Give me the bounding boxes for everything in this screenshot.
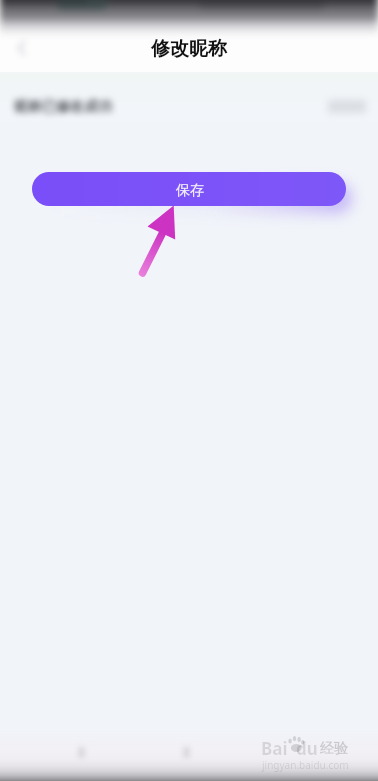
- button[interactable]: 昵称已修改成功: [0, 72, 378, 121]
- staticText: du: [296, 737, 318, 760]
- staticText: 修改昵称: [151, 37, 227, 61]
- button[interactable]: Back: [2, 28, 42, 68]
- staticText: 昵称已修改成功: [14, 98, 112, 116]
- staticText: Bai: [261, 737, 288, 760]
- button[interactable]: 保存: [32, 172, 346, 206]
- staticText: 保存: [176, 182, 204, 200]
- staticText: jingyan.baidu.com: [262, 758, 349, 772]
- staticText: 经验: [320, 740, 348, 758]
